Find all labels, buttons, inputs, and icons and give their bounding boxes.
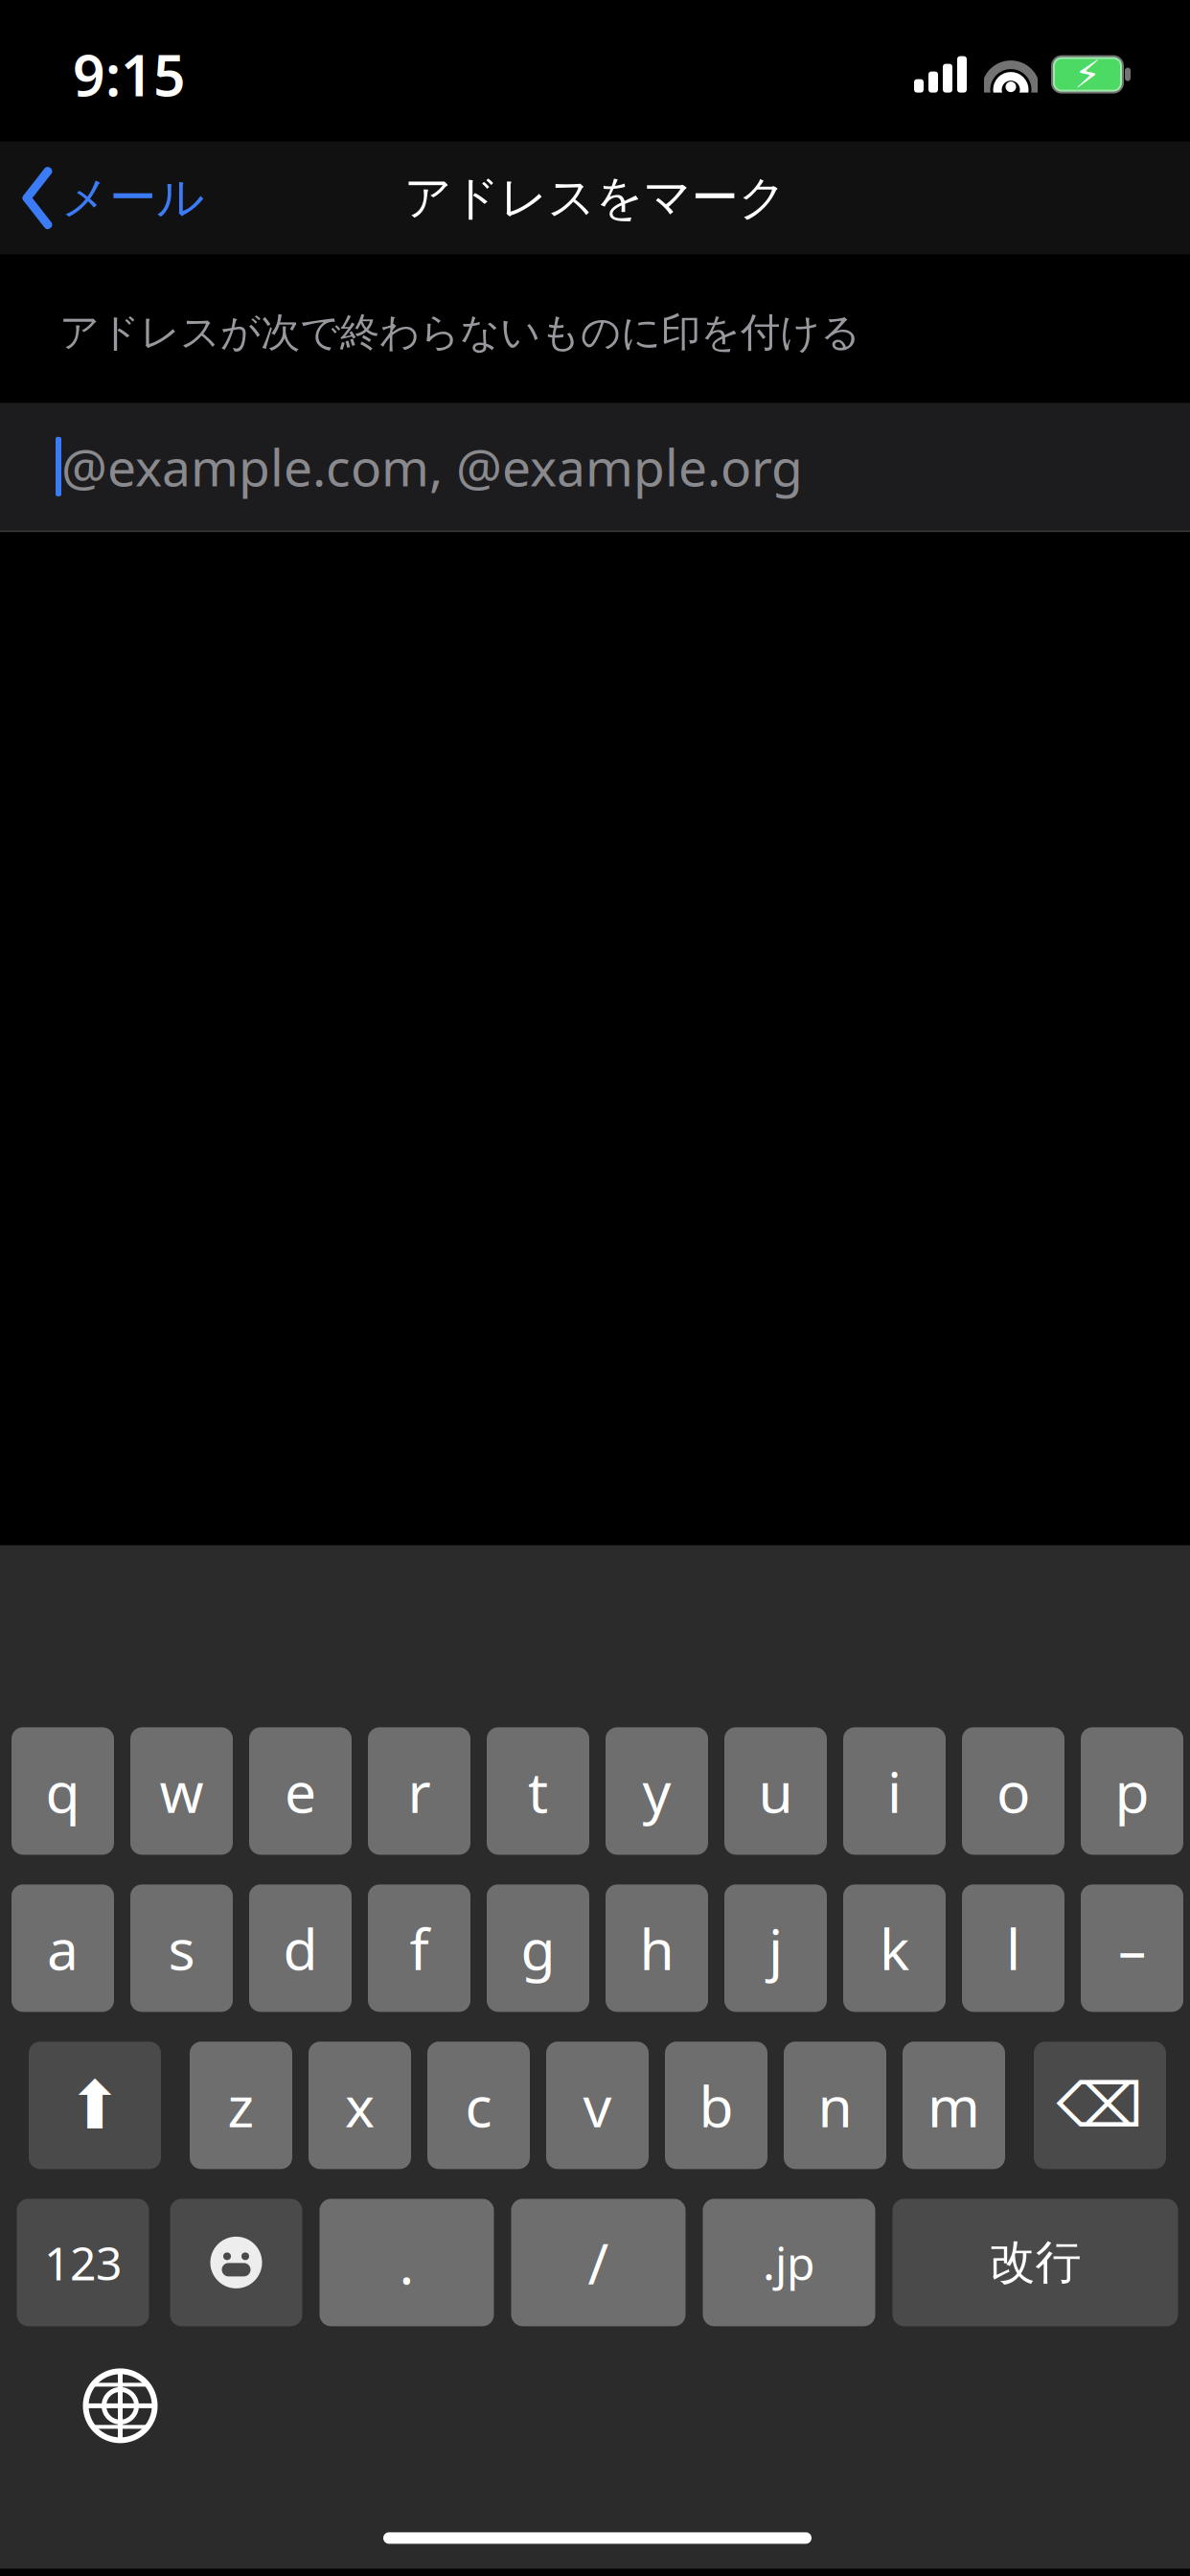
staticText: c xyxy=(465,2068,492,2143)
button[interactable]: d xyxy=(249,1884,352,2012)
staticText: / xyxy=(588,2225,609,2300)
staticText: r xyxy=(408,1754,431,1828)
button[interactable]: v xyxy=(546,2042,649,2169)
button[interactable]: y xyxy=(606,1727,708,1855)
button[interactable]: Emoji xyxy=(170,2199,302,2326)
staticText: @example.com, @example.org xyxy=(61,433,803,501)
staticText: u xyxy=(758,1754,793,1828)
button[interactable]: Delete xyxy=(1034,2042,1166,2169)
staticText: o xyxy=(996,1754,1030,1828)
button[interactable]: w xyxy=(130,1727,233,1855)
staticText: k xyxy=(880,1911,909,1985)
button[interactable]: j xyxy=(724,1884,827,2012)
staticText: m xyxy=(927,2068,980,2143)
button[interactable]: e xyxy=(249,1727,352,1855)
button[interactable]: r xyxy=(368,1727,470,1855)
staticText: w xyxy=(160,1754,204,1828)
button[interactable]: メール xyxy=(0,152,219,244)
button[interactable]: l xyxy=(962,1884,1064,2012)
button[interactable]: n xyxy=(784,2042,886,2169)
staticText: y xyxy=(642,1754,671,1828)
staticText: a xyxy=(47,1911,79,1985)
staticText: v xyxy=(583,2068,612,2143)
staticText: .jp xyxy=(763,2232,815,2293)
staticText: n xyxy=(818,2068,852,2143)
staticText: q xyxy=(46,1754,80,1828)
button[interactable]: p xyxy=(1081,1727,1183,1855)
button[interactable]: s xyxy=(130,1884,233,2012)
button[interactable]: Shift xyxy=(29,2042,161,2169)
button[interactable]: – xyxy=(1081,1884,1183,2012)
button[interactable]: @example.com, @example.org xyxy=(0,403,1190,530)
staticText: 改行 xyxy=(989,2234,1081,2291)
staticText: p xyxy=(1115,1754,1149,1828)
staticText: ⌫ xyxy=(1056,2071,1144,2140)
button[interactable]: i xyxy=(843,1727,946,1855)
staticText: – xyxy=(1118,1911,1146,1985)
button[interactable]: / xyxy=(511,2199,686,2326)
staticText: x xyxy=(345,2068,375,2143)
button[interactable]: . xyxy=(320,2199,494,2326)
button[interactable]: Next keyboard xyxy=(68,2353,173,2459)
staticText: f xyxy=(410,1911,429,1985)
staticText: l xyxy=(1006,1911,1020,1985)
staticText: h xyxy=(640,1911,674,1985)
staticText: . xyxy=(399,2225,414,2300)
button[interactable]: u xyxy=(724,1727,827,1855)
staticText: d xyxy=(283,1911,318,1985)
staticText: 9:15 xyxy=(73,37,186,112)
button[interactable]: .jp xyxy=(703,2199,875,2326)
button[interactable]: c xyxy=(427,2042,530,2169)
button[interactable]: h xyxy=(606,1884,708,2012)
button[interactable]: t xyxy=(487,1727,589,1855)
button[interactable]: z xyxy=(190,2042,292,2169)
button[interactable]: x xyxy=(309,2042,411,2169)
staticText: ⚡︎ xyxy=(1074,53,1101,96)
staticText: g xyxy=(521,1911,555,1985)
button[interactable]: 123 xyxy=(17,2199,149,2326)
staticText: 123 xyxy=(44,2232,122,2293)
button[interactable]: f xyxy=(368,1884,470,2012)
button[interactable]: a xyxy=(11,1884,114,2012)
staticText: アドレスをマーク xyxy=(404,169,786,227)
staticText: ⬆ xyxy=(67,2068,123,2143)
button[interactable]: o xyxy=(962,1727,1064,1855)
staticText: j xyxy=(768,1911,783,1985)
button[interactable]: g xyxy=(487,1884,589,2012)
staticText: e xyxy=(285,1754,316,1828)
staticText: z xyxy=(228,2068,254,2143)
button[interactable]: b xyxy=(665,2042,767,2169)
staticText: b xyxy=(699,2068,733,2143)
staticText: t xyxy=(528,1754,548,1828)
staticText: アドレスが次で終わらないものに印を付ける xyxy=(59,308,860,357)
button[interactable]: k xyxy=(843,1884,946,2012)
button[interactable]: q xyxy=(11,1727,114,1855)
staticText: メール xyxy=(61,169,204,227)
staticText: i xyxy=(887,1754,902,1828)
button[interactable]: m xyxy=(903,2042,1005,2169)
button[interactable]: 改行 xyxy=(892,2199,1178,2326)
staticText: s xyxy=(168,1911,195,1985)
